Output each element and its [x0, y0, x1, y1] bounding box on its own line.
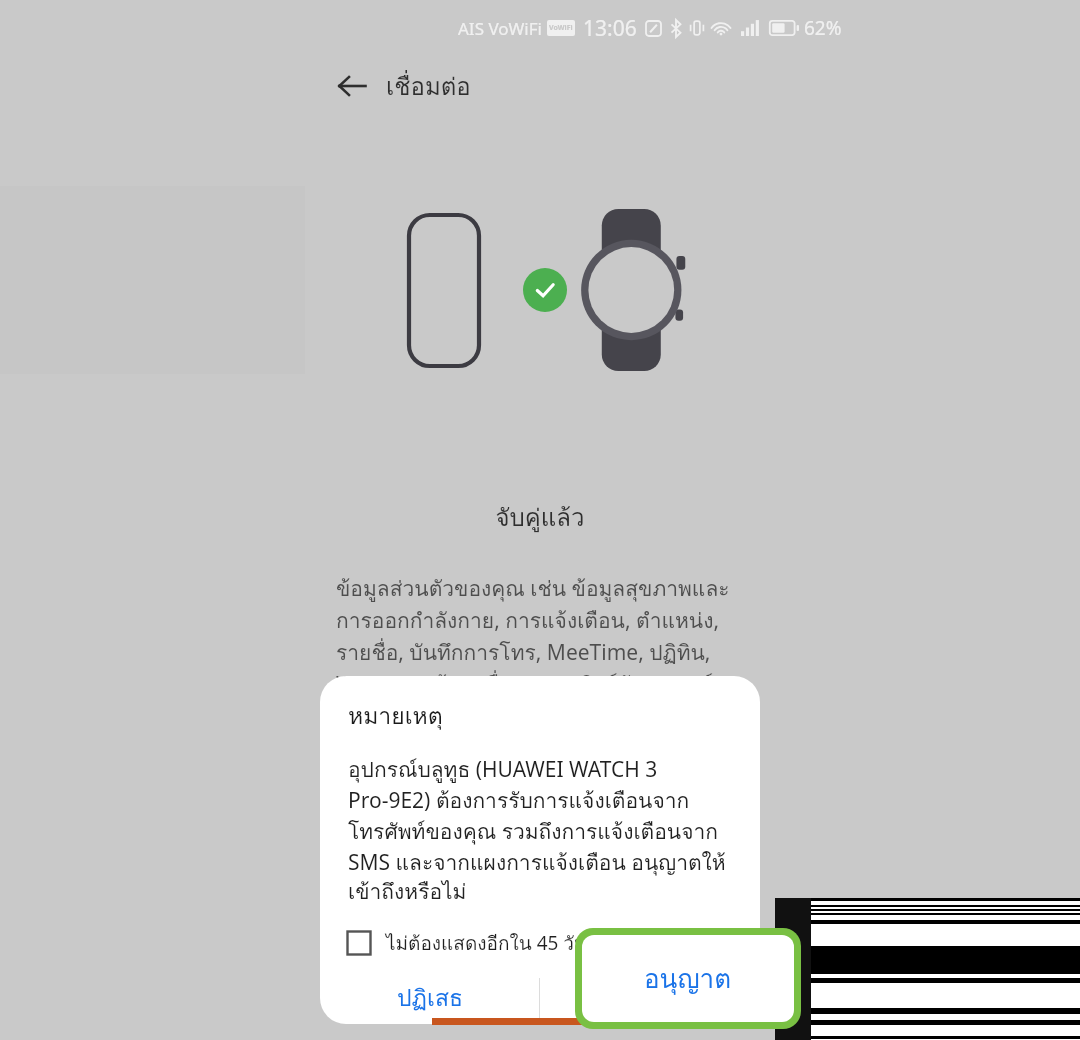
button[interactable]: อนุญาต	[575, 928, 801, 1029]
button[interactable]: ปฏิเสธ	[320, 972, 539, 1024]
staticText: ปฏิเสธ	[397, 980, 463, 1017]
staticText: 13:06	[583, 14, 637, 43]
staticText: ไม่ต้องแสดงอีกใน 45 วัน	[386, 928, 588, 958]
staticText: อนุญาต	[644, 958, 732, 999]
button[interactable]: ไม่ต้องแสดงอีกใน 45 วัน	[346, 924, 588, 962]
staticText: อุปกรณ์บลูทูธ (HUAWEI WATCH 3 Pro-9E2) ต…	[348, 753, 738, 908]
staticText: VoWiFi	[549, 23, 573, 33]
button[interactable]: Back	[328, 62, 376, 110]
staticText: เชื่อมต่อ	[386, 67, 471, 105]
staticText: จับคู่แล้ว	[0, 498, 1080, 536]
staticText: หมายเหตุ	[348, 698, 443, 735]
staticText: อนุญาต	[612, 980, 689, 1017]
staticText: AIS VoWiFi	[458, 17, 542, 40]
staticText: 62%	[804, 15, 842, 41]
button[interactable]: อนุญาต	[540, 972, 760, 1024]
staticText: ข้อมูลส่วนตัวของคุณ เช่น ข้อมูลสุขภาพและ…	[336, 572, 746, 701]
